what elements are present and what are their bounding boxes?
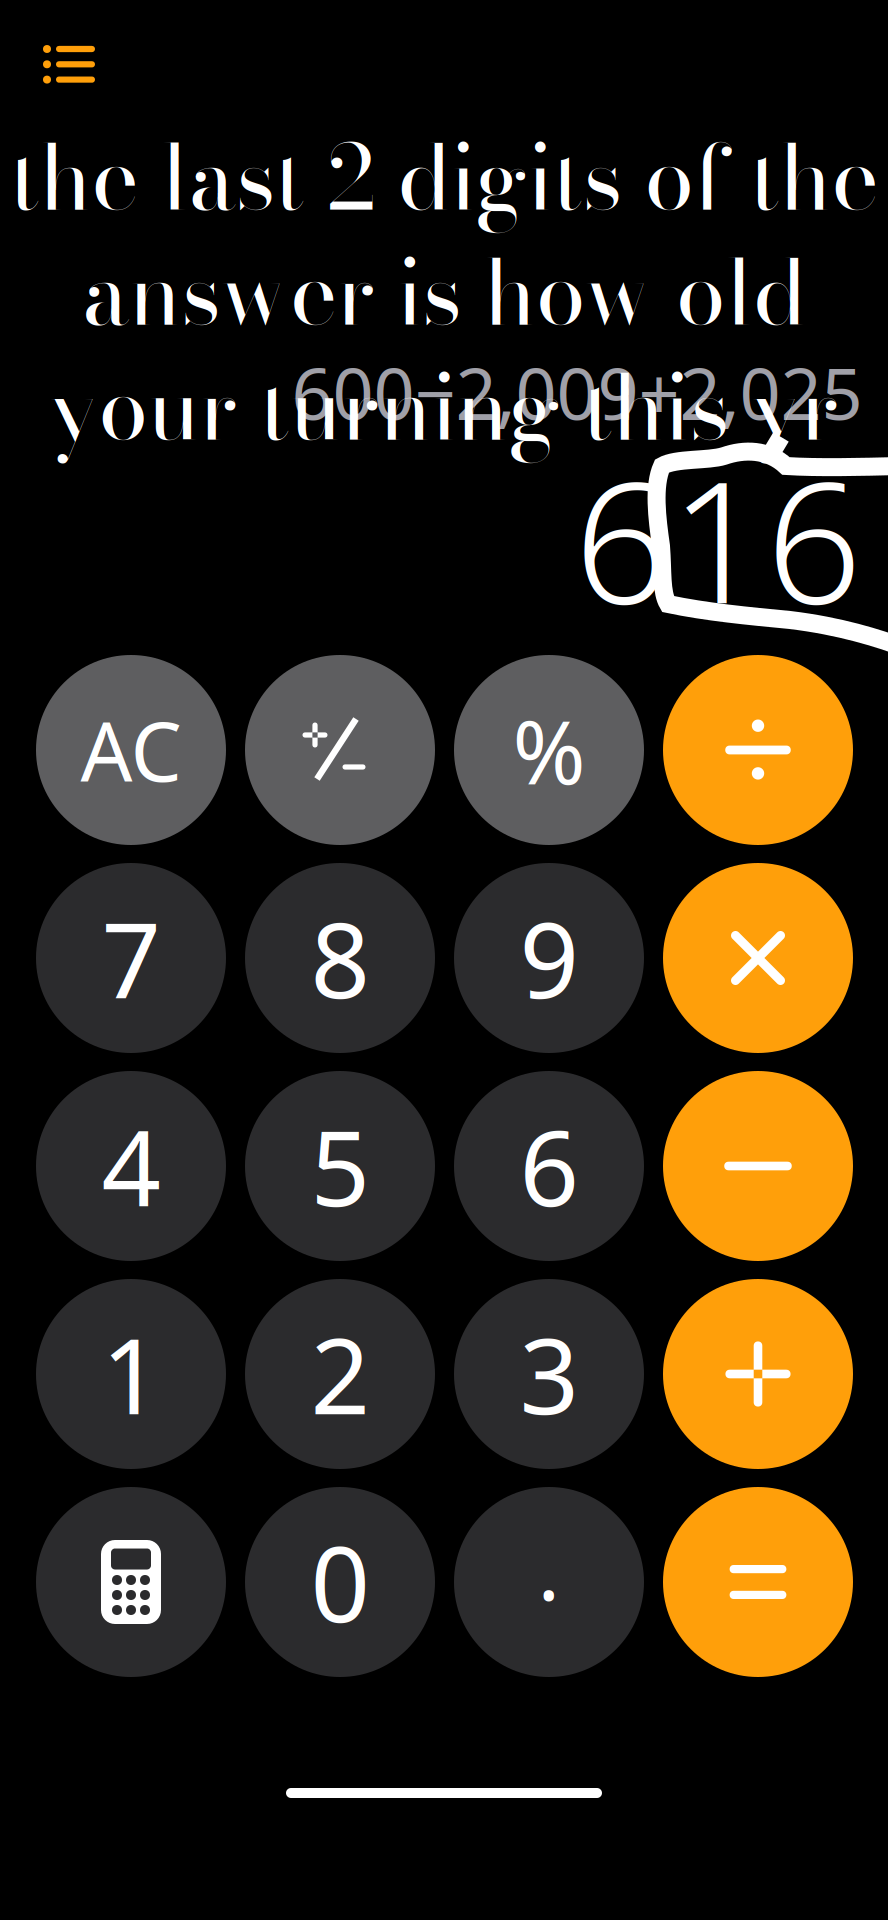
- staticText: the last 2 digits of the: [9, 109, 878, 245]
- button[interactable]: Plus minus: [245, 655, 435, 845]
- staticText: 616: [574, 426, 862, 650]
- button[interactable]: 0: [245, 1487, 435, 1677]
- staticText: 1: [101, 1305, 160, 1443]
- staticText: AC: [80, 696, 181, 804]
- button[interactable]: %: [454, 655, 644, 845]
- button[interactable]: Minus: [663, 1071, 853, 1261]
- button[interactable]: Scientific calculator: [36, 1487, 226, 1677]
- button[interactable]: Plus: [663, 1279, 853, 1469]
- button[interactable]: Equals: [663, 1487, 853, 1677]
- staticText: 0: [310, 1513, 369, 1651]
- button[interactable]: History: [17, 19, 121, 110]
- button[interactable]: 2: [245, 1279, 435, 1469]
- staticText: your turning this yr: [49, 339, 838, 475]
- button[interactable]: 7: [36, 863, 226, 1053]
- button[interactable]: 1: [36, 1279, 226, 1469]
- button[interactable]: .: [454, 1487, 644, 1677]
- button[interactable]: 4: [36, 1071, 226, 1261]
- staticText: 8: [310, 889, 369, 1027]
- staticText: .: [537, 1512, 560, 1624]
- button[interactable]: 8: [245, 863, 435, 1053]
- staticText: 6: [519, 1097, 578, 1235]
- button[interactable]: 5: [245, 1071, 435, 1261]
- button[interactable]: 6: [454, 1071, 644, 1261]
- staticText: 9: [519, 889, 578, 1027]
- button[interactable]: 9: [454, 863, 644, 1053]
- staticText: 600−2,009+2,025: [291, 344, 862, 440]
- staticText: %: [512, 692, 585, 808]
- staticText: 7: [101, 889, 160, 1027]
- staticText: answer is how old: [82, 224, 806, 360]
- button[interactable]: AC: [36, 655, 226, 845]
- staticText: 4: [101, 1097, 160, 1235]
- staticText: 3: [519, 1305, 578, 1443]
- button[interactable]: Divide: [663, 655, 853, 845]
- staticText: 2: [310, 1305, 369, 1443]
- staticText: 5: [310, 1097, 369, 1235]
- button[interactable]: 3: [454, 1279, 644, 1469]
- button[interactable]: Multiply: [663, 863, 853, 1053]
